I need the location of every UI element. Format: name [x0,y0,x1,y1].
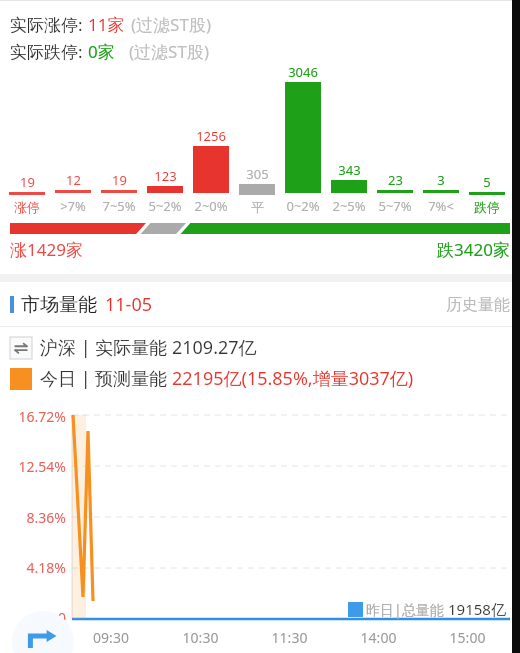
button[interactable]: Switch market [10,335,257,360]
staticText: 2~5% [332,197,366,215]
staticText: 市场量能 [21,293,97,317]
other: Switch market [10,337,32,359]
staticText: 昨日|总量能 [366,600,448,619]
staticText: 5 [483,173,491,191]
staticText: 3046 [288,63,318,81]
button[interactable]: 343 [326,161,372,215]
staticText: 1256 [196,127,226,145]
staticText: 5~7% [378,197,412,215]
staticText: 09:30 [66,628,156,647]
staticText: 7%< [428,197,454,215]
button[interactable]: 5 [464,173,510,215]
staticText: 343 [338,161,361,179]
button[interactable]: 19 [96,171,142,215]
staticText: (过滤ST股) [131,13,211,36]
staticText: 涨1429家 [10,238,83,261]
button[interactable]: 市场量能 [0,282,520,326]
button[interactable]: 昨日|总量能 [348,599,506,619]
staticText: 5~2% [148,197,182,215]
staticText: 实际跌停: [10,40,83,63]
staticText: (过滤ST股) [129,40,209,63]
button[interactable]: 3 [418,171,464,215]
staticText: 11:30 [245,628,334,647]
button[interactable]: 1256 [188,127,234,215]
button[interactable]: 23 [372,171,418,215]
staticText: 123 [154,167,177,185]
staticText: 12.54% [6,457,66,476]
staticText: 8.36% [6,508,66,527]
staticText: 10:30 [156,628,245,647]
button[interactable]: 305 [234,165,280,215]
staticText: 2~0% [194,197,228,215]
staticText: 14:00 [334,628,423,647]
staticText: 12 [66,171,81,189]
staticText: 跌3420家 [437,238,510,261]
staticText: 实际涨停: [10,13,83,36]
staticText: 11-05 [105,292,152,317]
button[interactable]: 123 [142,167,188,215]
staticText: 305 [246,165,269,183]
staticText: 22195亿(15.85%,增量3037亿) [172,366,414,391]
staticText: 23 [388,171,403,189]
button[interactable]: 12 [50,171,96,215]
button[interactable]: Share [12,611,74,653]
staticText: 15:00 [423,628,512,647]
staticText: 跌停 [474,199,500,215]
staticText: 11家 [88,13,125,36]
staticText: 涨停 [14,199,40,215]
staticText: 19 [20,173,35,191]
button[interactable]: 今日 | 预测量能 [10,366,414,391]
staticText: 16.72% [6,407,66,426]
staticText: 0家 [88,40,115,63]
staticText: 7~5% [102,197,136,215]
staticText: 19158亿 [448,599,506,619]
staticText: 0~2% [286,197,320,215]
staticText: 3 [437,171,445,189]
button[interactable]: 3046 [280,63,326,215]
staticText: 平 [251,199,264,215]
staticText: 今日 | 预测量能 [40,366,172,391]
staticText: 沪深 | 实际量能 2109.27亿 [40,335,257,360]
staticText: >7% [60,197,86,215]
staticText: 4.18% [6,558,66,577]
staticText: 19 [112,171,127,189]
button[interactable]: 19 [4,173,50,215]
staticText: 0 [6,608,66,627]
staticText: 历史量能 [446,295,510,315]
